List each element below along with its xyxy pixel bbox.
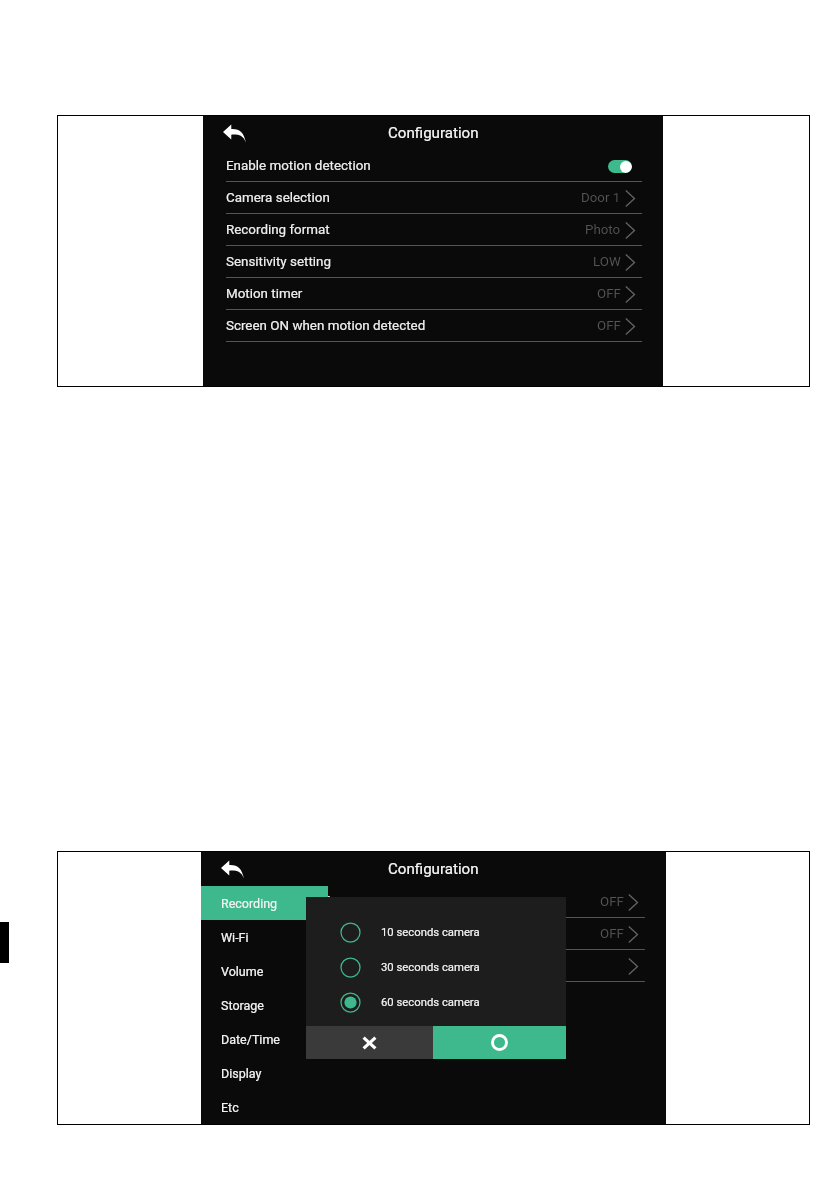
- staticText: Display: [221, 1066, 262, 1081]
- staticText: Recording format: [226, 222, 330, 238]
- staticText: Enable motion detection: [226, 158, 371, 174]
- staticText: Volume: [221, 964, 264, 979]
- staticText: LOW: [593, 254, 621, 270]
- staticText: 30 seconds camera: [381, 961, 480, 974]
- button[interactable]: 60 seconds camera: [306, 985, 566, 1020]
- button[interactable]: Recording time of camera: [201, 886, 666, 918]
- staticText: Motion timer: [224, 926, 301, 942]
- staticText: Screen ON when motion detected: [226, 318, 426, 334]
- staticText: Motion timer: [226, 286, 303, 302]
- button[interactable]: Motion timer: [201, 918, 666, 950]
- staticText: Sensitivity setting: [226, 254, 331, 270]
- button[interactable]: Date/Time: [201, 1022, 328, 1056]
- staticText: 10 seconds camera: [381, 926, 480, 939]
- staticText: OFF: [600, 894, 624, 910]
- button[interactable]: Sensitivity setting: [203, 246, 663, 278]
- staticText: Door 1: [581, 190, 621, 206]
- button[interactable]: Screen ON when motion detected: [203, 310, 663, 342]
- staticText: OFF: [600, 926, 624, 942]
- button[interactable]: Recording format: [201, 950, 666, 982]
- button[interactable]: Etc: [201, 1090, 328, 1124]
- button[interactable]: Enable motion detection: [203, 150, 663, 182]
- button[interactable]: Motion timer: [203, 278, 663, 310]
- button[interactable]: Camera selection: [203, 182, 663, 214]
- staticText: Configuration: [388, 124, 479, 142]
- button[interactable]: Recording: [201, 886, 328, 920]
- staticText: Recording: [221, 896, 278, 911]
- staticText: Recording format: [224, 958, 328, 974]
- staticText: OFF: [597, 318, 621, 334]
- button[interactable]: 30 seconds camera: [306, 950, 566, 985]
- button[interactable]: Enable motion detection: [608, 160, 632, 173]
- staticText: Storage: [221, 998, 264, 1013]
- staticText: Date/Time: [221, 1032, 280, 1047]
- staticText: Etc: [221, 1100, 239, 1115]
- staticText: Configuration: [388, 860, 479, 878]
- staticText: Photo: [585, 222, 621, 238]
- button[interactable]: Storage: [201, 988, 328, 1022]
- button[interactable]: Confirm: [433, 1026, 566, 1059]
- button[interactable]: Wi-Fi: [201, 920, 328, 954]
- button[interactable]: Display: [201, 1056, 328, 1090]
- staticText: Camera selection: [226, 190, 330, 206]
- staticText: 60 seconds camera: [381, 996, 480, 1009]
- button[interactable]: Volume: [201, 954, 328, 988]
- button[interactable]: Cancel: [306, 1026, 433, 1059]
- staticText: Recording time of camera: [224, 894, 378, 910]
- button[interactable]: Back: [217, 854, 247, 884]
- button[interactable]: Recording format: [203, 214, 663, 246]
- staticText: Wi-Fi: [221, 930, 249, 945]
- button[interactable]: 10 seconds camera: [306, 915, 566, 950]
- button[interactable]: Back: [219, 118, 249, 148]
- staticText: OFF: [597, 286, 621, 302]
